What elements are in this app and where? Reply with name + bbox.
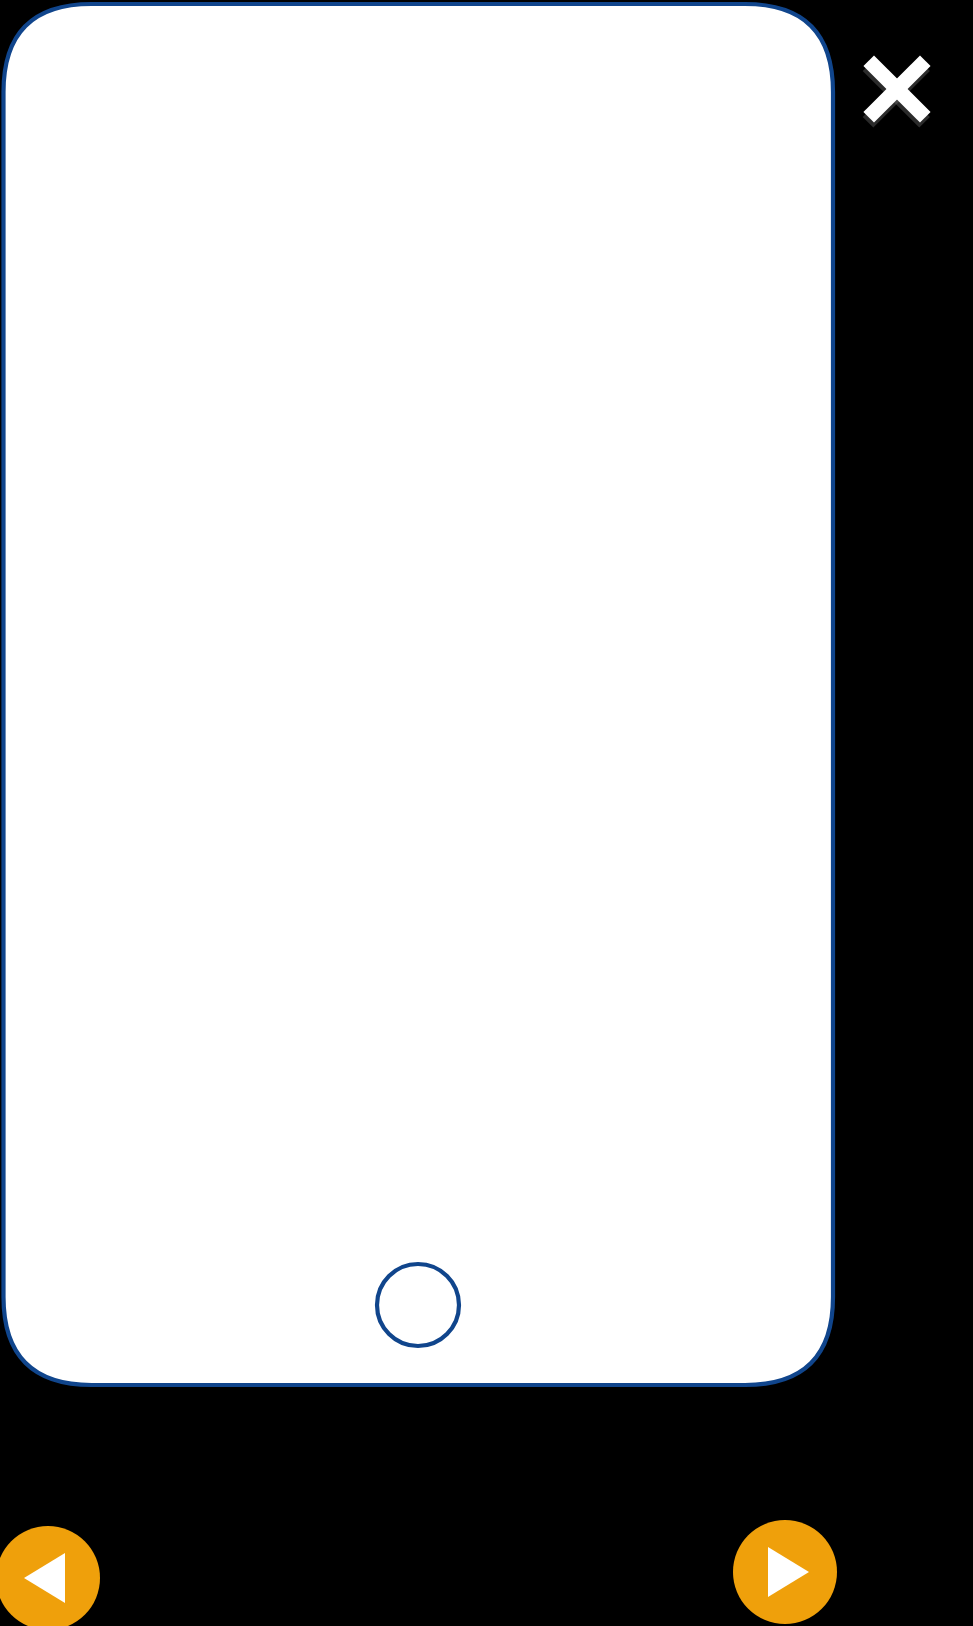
button[interactable]: Close (842, 34, 952, 144)
button[interactable]: Previous (0, 1522, 152, 1626)
button[interactable]: Next (681, 1516, 889, 1626)
